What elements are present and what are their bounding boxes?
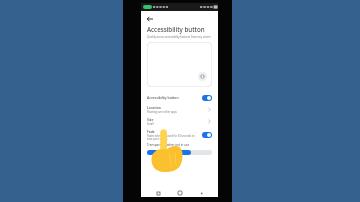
button[interactable]: Home bbox=[176, 189, 184, 197]
staticText: Transparency when not in use bbox=[147, 143, 190, 147]
staticText: Fades when not used for 30 seconds to sa… bbox=[147, 134, 200, 140]
button[interactable]: Size bbox=[141, 117, 218, 126]
staticText: Accessibility button bbox=[147, 25, 205, 33]
staticText: Small bbox=[147, 122, 154, 126]
button[interactable]: Accessibility button bbox=[141, 93, 218, 102]
button[interactable] bbox=[147, 149, 212, 155]
button[interactable]: Back bbox=[145, 14, 155, 24]
button[interactable]: Fade bbox=[141, 129, 218, 140]
button[interactable]: Back bbox=[197, 189, 205, 197]
staticText: Floating over other apps bbox=[147, 110, 177, 114]
button[interactable] bbox=[147, 42, 212, 87]
button[interactable]: Location bbox=[141, 105, 218, 114]
staticText: Accessibility button bbox=[147, 95, 179, 100]
staticText: Size bbox=[147, 117, 154, 122]
staticText: Quickly access accessibility features fr… bbox=[147, 35, 211, 39]
staticText: Fade bbox=[147, 129, 155, 134]
button[interactable]: Recents bbox=[154, 189, 162, 197]
staticText: Location bbox=[147, 105, 161, 110]
